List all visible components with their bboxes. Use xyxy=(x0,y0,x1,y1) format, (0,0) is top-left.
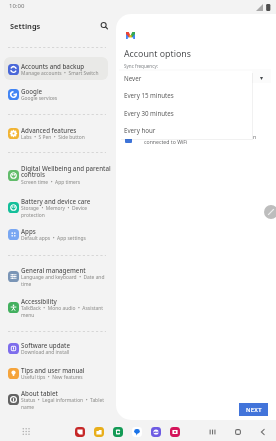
button[interactable]: Software update xyxy=(4,334,108,362)
staticText: Sync frequency: xyxy=(124,63,158,69)
staticText: Language and keyboard • Date and time xyxy=(21,274,105,287)
staticText: Google services xyxy=(21,95,58,102)
button[interactable]: Tips and user manual xyxy=(4,359,108,387)
staticText: Download and install xyxy=(21,349,70,356)
staticText: Labs • S Pen • Side button xyxy=(21,134,85,141)
button[interactable]: Messages xyxy=(132,427,142,437)
staticText: General management xyxy=(21,266,86,274)
staticText: Storage • Memory • Device protection xyxy=(21,205,88,218)
staticText: Software update xyxy=(21,341,70,349)
staticText: Useful tips • New features xyxy=(21,374,83,381)
button[interactable]: Every 15 minutes xyxy=(119,86,252,103)
staticText: About tablet xyxy=(21,389,58,397)
staticText: Account options xyxy=(124,48,191,60)
button[interactable]: Slides xyxy=(75,427,85,437)
staticText: Google xyxy=(21,87,43,95)
staticText: Screen time • App timers xyxy=(21,179,81,186)
staticText: Every 30 minutes xyxy=(124,109,174,117)
button[interactable]: Search xyxy=(98,19,110,31)
staticText: Advanced features xyxy=(21,126,77,134)
button[interactable]: Accessibility xyxy=(4,293,108,321)
staticText: connected to WiFi xyxy=(144,138,188,145)
button[interactable]: Advanced features xyxy=(4,119,108,147)
staticText: NEXT xyxy=(246,406,262,414)
staticText: Tips and user manual xyxy=(21,366,85,374)
button[interactable]: Every 30 minutes xyxy=(119,104,252,121)
button[interactable]: NEXT xyxy=(239,403,268,416)
button[interactable]: Home xyxy=(232,426,244,438)
staticText: Settings xyxy=(10,21,41,31)
staticText: Battery and device care xyxy=(21,197,91,205)
button[interactable]: Back xyxy=(257,426,269,438)
staticText: TalkBack • Mono audio • Assistant menu xyxy=(21,305,104,318)
staticText: Status • Legal information • Tablet name xyxy=(21,397,104,410)
button[interactable]: Recents xyxy=(206,426,218,438)
button[interactable]: Battery and device care xyxy=(4,193,108,221)
button[interactable]: Camera xyxy=(170,427,180,437)
button[interactable]: Digital Wellbeing and parental controls xyxy=(4,161,108,189)
button[interactable]: About tablet xyxy=(4,385,108,413)
staticText: Accessibility xyxy=(21,297,57,305)
staticText: Apps xyxy=(21,227,36,235)
button[interactable]: Accounts and backup xyxy=(4,55,108,83)
staticText: n xyxy=(253,133,257,140)
button[interactable]: General management xyxy=(4,262,108,290)
staticText: Never xyxy=(124,74,142,82)
staticText: Digital Wellbeing and parental controls xyxy=(21,164,111,179)
staticText: Manage accounts • Smart Switch xyxy=(21,70,99,77)
button[interactable]: Files xyxy=(94,427,104,437)
button[interactable]: Every hour xyxy=(119,121,252,138)
button[interactable]: Edit xyxy=(264,205,276,219)
staticText: Default apps • App settings xyxy=(21,235,86,242)
button[interactable]: Photos xyxy=(151,427,161,437)
button[interactable]: Apps xyxy=(4,220,108,248)
button[interactable]: Never xyxy=(119,69,252,86)
staticText: Every hour xyxy=(124,126,156,134)
button[interactable]: Calendar xyxy=(113,427,123,437)
button[interactable]: Google xyxy=(4,80,108,108)
staticText: Every 15 minutes xyxy=(124,91,174,99)
staticText: Accounts and backup xyxy=(21,62,85,70)
staticText: 10:00 xyxy=(9,2,25,10)
